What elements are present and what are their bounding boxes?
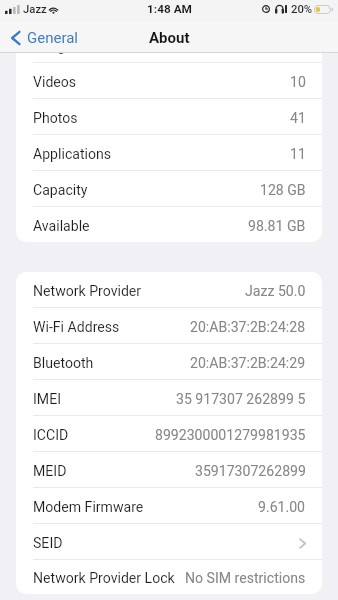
staticText: 35917307262899 (195, 463, 306, 480)
staticText: 10 (290, 74, 306, 91)
staticText: Network Provider (33, 283, 142, 300)
button[interactable]: Capacity (16, 171, 322, 207)
staticText: 41 (290, 110, 306, 127)
button[interactable]: Applications (16, 135, 322, 171)
staticText: Wi-Fi Address (33, 319, 120, 336)
button[interactable]: Modem Firmware (16, 488, 322, 524)
staticText: 20:AB:37:2B:24:28 (190, 319, 306, 336)
staticText: Applications (33, 146, 112, 163)
staticText: MEID (33, 463, 67, 480)
staticText: Photos (33, 110, 78, 127)
button[interactable]: Bluetooth (16, 344, 322, 380)
staticText: No SIM restrictions (185, 570, 306, 587)
staticText: 128 GB (260, 182, 306, 199)
staticText: Capacity (33, 182, 88, 199)
button[interactable]: Videos (16, 63, 322, 99)
button[interactable]: Songs (16, 53, 322, 63)
staticText: ICCID (33, 427, 69, 444)
staticText: General (27, 29, 79, 47)
button[interactable]: Back to General (11, 29, 79, 47)
staticText: Jazz 50.0 (245, 283, 306, 300)
staticText: Jazz (23, 3, 47, 16)
staticText: Songs (33, 53, 73, 55)
staticText: 20% (291, 3, 313, 16)
staticText: 1:48 AM (147, 2, 192, 16)
staticText: 98.81 GB (248, 218, 306, 235)
staticText: Videos (33, 74, 77, 91)
staticText: SEID (33, 535, 63, 552)
button[interactable]: IMEI (16, 380, 322, 416)
button[interactable]: Available (16, 207, 322, 242)
staticText: Network Provider Lock (33, 570, 175, 587)
staticText: IMEI (33, 391, 61, 408)
staticText: 20:AB:37:2B:24:29 (190, 355, 306, 372)
staticText: 9.61.00 (258, 499, 306, 516)
staticText: Modem Firmware (33, 499, 144, 516)
button[interactable]: Wi-Fi Address (16, 308, 322, 344)
staticText: 11 (290, 146, 306, 163)
button[interactable]: Network Provider (16, 272, 322, 308)
button[interactable]: Photos (16, 99, 322, 135)
staticText: About (149, 29, 190, 47)
button[interactable]: SEID (16, 524, 322, 560)
button[interactable]: MEID (16, 452, 322, 488)
staticText: Bluetooth (33, 355, 94, 372)
button[interactable]: ICCID (16, 416, 322, 452)
button[interactable]: Network Provider Lock (16, 560, 322, 594)
staticText: 8992300001279981935 (155, 427, 306, 444)
staticText: 35 917307 262899 5 (176, 391, 306, 408)
staticText: Available (33, 218, 90, 235)
